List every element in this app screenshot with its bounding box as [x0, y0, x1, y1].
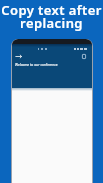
staticText: Welcome to our conference	[15, 62, 58, 66]
button[interactable]: Back	[15, 54, 22, 59]
button[interactable]: Copy	[82, 54, 86, 59]
staticText: Copy text after replacing	[0, 1, 103, 32]
